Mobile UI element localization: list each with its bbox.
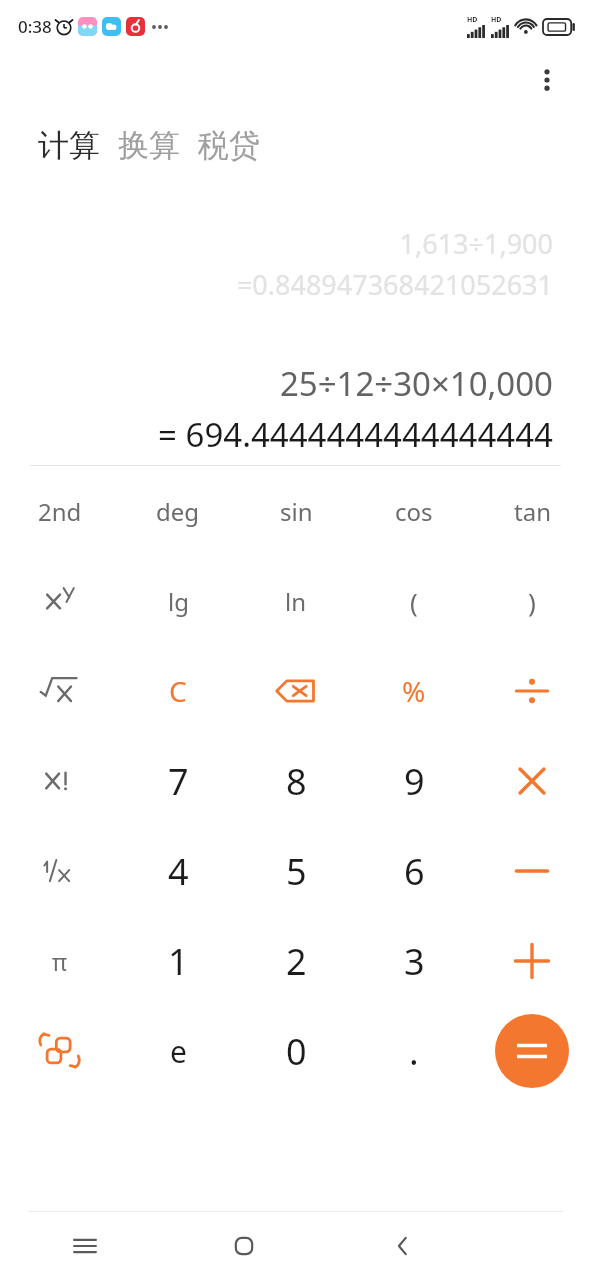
staticText: 3 bbox=[404, 937, 425, 986]
button[interactable]: 换算 bbox=[118, 122, 180, 169]
staticText: lg bbox=[168, 585, 189, 618]
button[interactable]: One over x bbox=[0, 826, 119, 916]
button[interactable]: ( bbox=[355, 556, 473, 646]
button[interactable]: More options bbox=[525, 58, 569, 102]
button[interactable]: 2 bbox=[237, 916, 355, 1006]
button[interactable]: π bbox=[0, 916, 119, 1006]
button[interactable]: Back bbox=[375, 1218, 431, 1274]
button[interactable]: sin bbox=[237, 466, 355, 556]
button[interactable]: C bbox=[119, 646, 237, 736]
staticText: 7 bbox=[168, 757, 189, 806]
staticText: π bbox=[52, 946, 68, 977]
staticText: 0 bbox=[286, 1027, 307, 1076]
staticText: cos bbox=[395, 495, 433, 528]
staticText: 9 bbox=[404, 757, 425, 806]
staticText: HD bbox=[467, 15, 478, 25]
staticText: =0.848947368421052631 bbox=[236, 266, 553, 303]
button[interactable]: 6 bbox=[355, 826, 473, 916]
button[interactable]: 1 bbox=[119, 916, 237, 1006]
staticText: HD bbox=[491, 15, 502, 25]
button[interactable]: 7 bbox=[119, 736, 237, 826]
staticText: 换算 bbox=[118, 126, 180, 165]
staticText: ( bbox=[410, 584, 418, 619]
button[interactable]: Plus bbox=[473, 916, 591, 1006]
button[interactable]: Convert bbox=[0, 1006, 119, 1096]
staticText: sin bbox=[280, 495, 313, 528]
staticText: 1 bbox=[168, 937, 189, 986]
staticText: 1,613÷1,900 bbox=[399, 225, 553, 262]
button[interactable]: Equals bbox=[495, 1014, 569, 1088]
button[interactable]: . bbox=[355, 1006, 473, 1096]
button[interactable]: ln bbox=[237, 556, 355, 646]
button[interactable]: lg bbox=[119, 556, 237, 646]
button[interactable]: Factorial bbox=[0, 736, 119, 826]
staticText: = 694.4444444444444444 bbox=[158, 412, 553, 457]
button[interactable]: cos bbox=[355, 466, 473, 556]
staticText: 计算 bbox=[38, 126, 100, 165]
button[interactable]: % bbox=[355, 646, 473, 736]
staticText: 8 bbox=[286, 757, 307, 806]
button[interactable]: 0 bbox=[237, 1006, 355, 1096]
button[interactable]: Home bbox=[216, 1218, 272, 1274]
button[interactable]: deg bbox=[119, 466, 237, 556]
staticText: % bbox=[402, 672, 426, 710]
staticText: 2 bbox=[286, 937, 307, 986]
staticText: ) bbox=[528, 584, 536, 619]
button[interactable]: 3 bbox=[355, 916, 473, 1006]
button[interactable]: Backspace bbox=[237, 646, 355, 736]
staticText: deg bbox=[156, 495, 200, 528]
button[interactable]: Square root bbox=[0, 646, 119, 736]
staticText: 25÷12÷30×10,000 bbox=[279, 361, 553, 406]
button[interactable]: 2nd bbox=[0, 466, 119, 556]
staticText: C bbox=[169, 672, 187, 710]
button[interactable]: Minus bbox=[473, 826, 591, 916]
staticText: 4 bbox=[168, 847, 189, 896]
staticText: ln bbox=[285, 585, 307, 618]
button[interactable]: Multiply bbox=[473, 736, 591, 826]
button[interactable]: Recents bbox=[57, 1218, 113, 1274]
button[interactable]: e bbox=[119, 1006, 237, 1096]
button[interactable]: Divide bbox=[473, 646, 591, 736]
button[interactable]: 税贷 bbox=[198, 122, 260, 169]
button[interactable]: 9 bbox=[355, 736, 473, 826]
staticText: 0:38 bbox=[18, 15, 52, 38]
staticText: 5 bbox=[286, 847, 307, 896]
button[interactable]: 5 bbox=[237, 826, 355, 916]
staticText: 税贷 bbox=[198, 126, 260, 165]
staticText: . bbox=[409, 1027, 419, 1076]
button[interactable]: 8 bbox=[237, 736, 355, 826]
staticText: 6 bbox=[404, 847, 425, 896]
button[interactable]: x to the power of y bbox=[0, 556, 119, 646]
button[interactable]: tan bbox=[473, 466, 591, 556]
button[interactable]: 4 bbox=[119, 826, 237, 916]
staticText: 2nd bbox=[38, 495, 82, 528]
button[interactable]: 计算 bbox=[38, 122, 100, 169]
button[interactable]: ) bbox=[473, 556, 591, 646]
staticText: tan bbox=[514, 495, 551, 528]
staticText: e bbox=[170, 1031, 187, 1072]
